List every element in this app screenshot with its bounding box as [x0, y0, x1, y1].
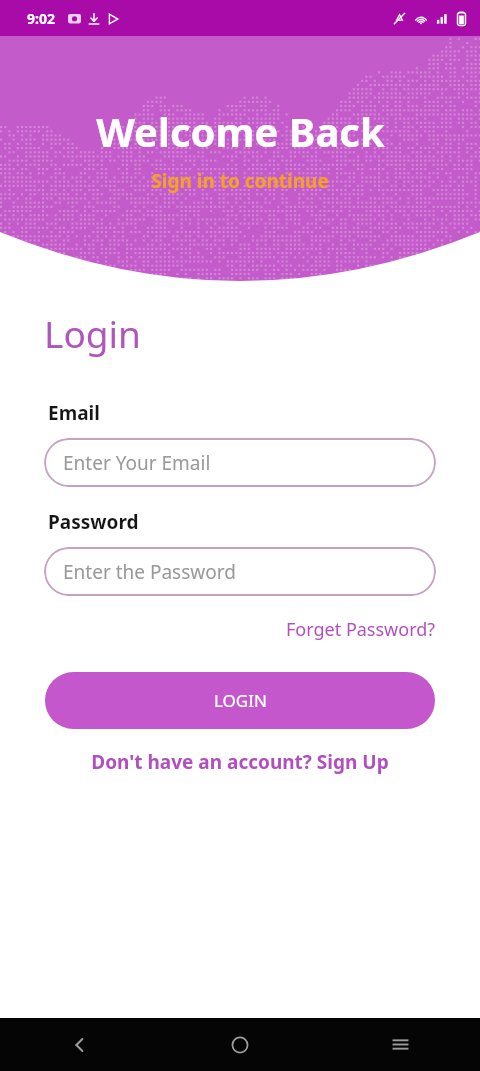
- button[interactable]: Back: [0, 1018, 160, 1071]
- staticText: Login: [44, 308, 141, 358]
- staticText: Don't have an account? Sign Up: [91, 749, 389, 775]
- button[interactable]: Forget Password?: [286, 615, 480, 644]
- staticText: Forget Password?: [286, 617, 436, 642]
- button[interactable]: Home: [160, 1018, 320, 1071]
- button[interactable]: Don't have an account? Sign Up: [83, 745, 397, 779]
- staticText: Enter Your Email: [63, 450, 211, 476]
- staticText: Enter the Password: [63, 559, 236, 585]
- staticText: Sign in to continue: [151, 168, 329, 194]
- staticText: 9:02: [27, 9, 55, 28]
- button[interactable]: Enter Your Email: [44, 438, 436, 487]
- button[interactable]: LOGIN: [45, 672, 435, 729]
- button[interactable]: Recent apps: [320, 1018, 480, 1071]
- staticText: Email: [48, 400, 100, 426]
- staticText: Welcome Back: [96, 104, 385, 158]
- staticText: LOGIN: [214, 689, 267, 712]
- staticText: Password: [48, 509, 139, 535]
- button[interactable]: Enter the Password: [44, 547, 436, 596]
